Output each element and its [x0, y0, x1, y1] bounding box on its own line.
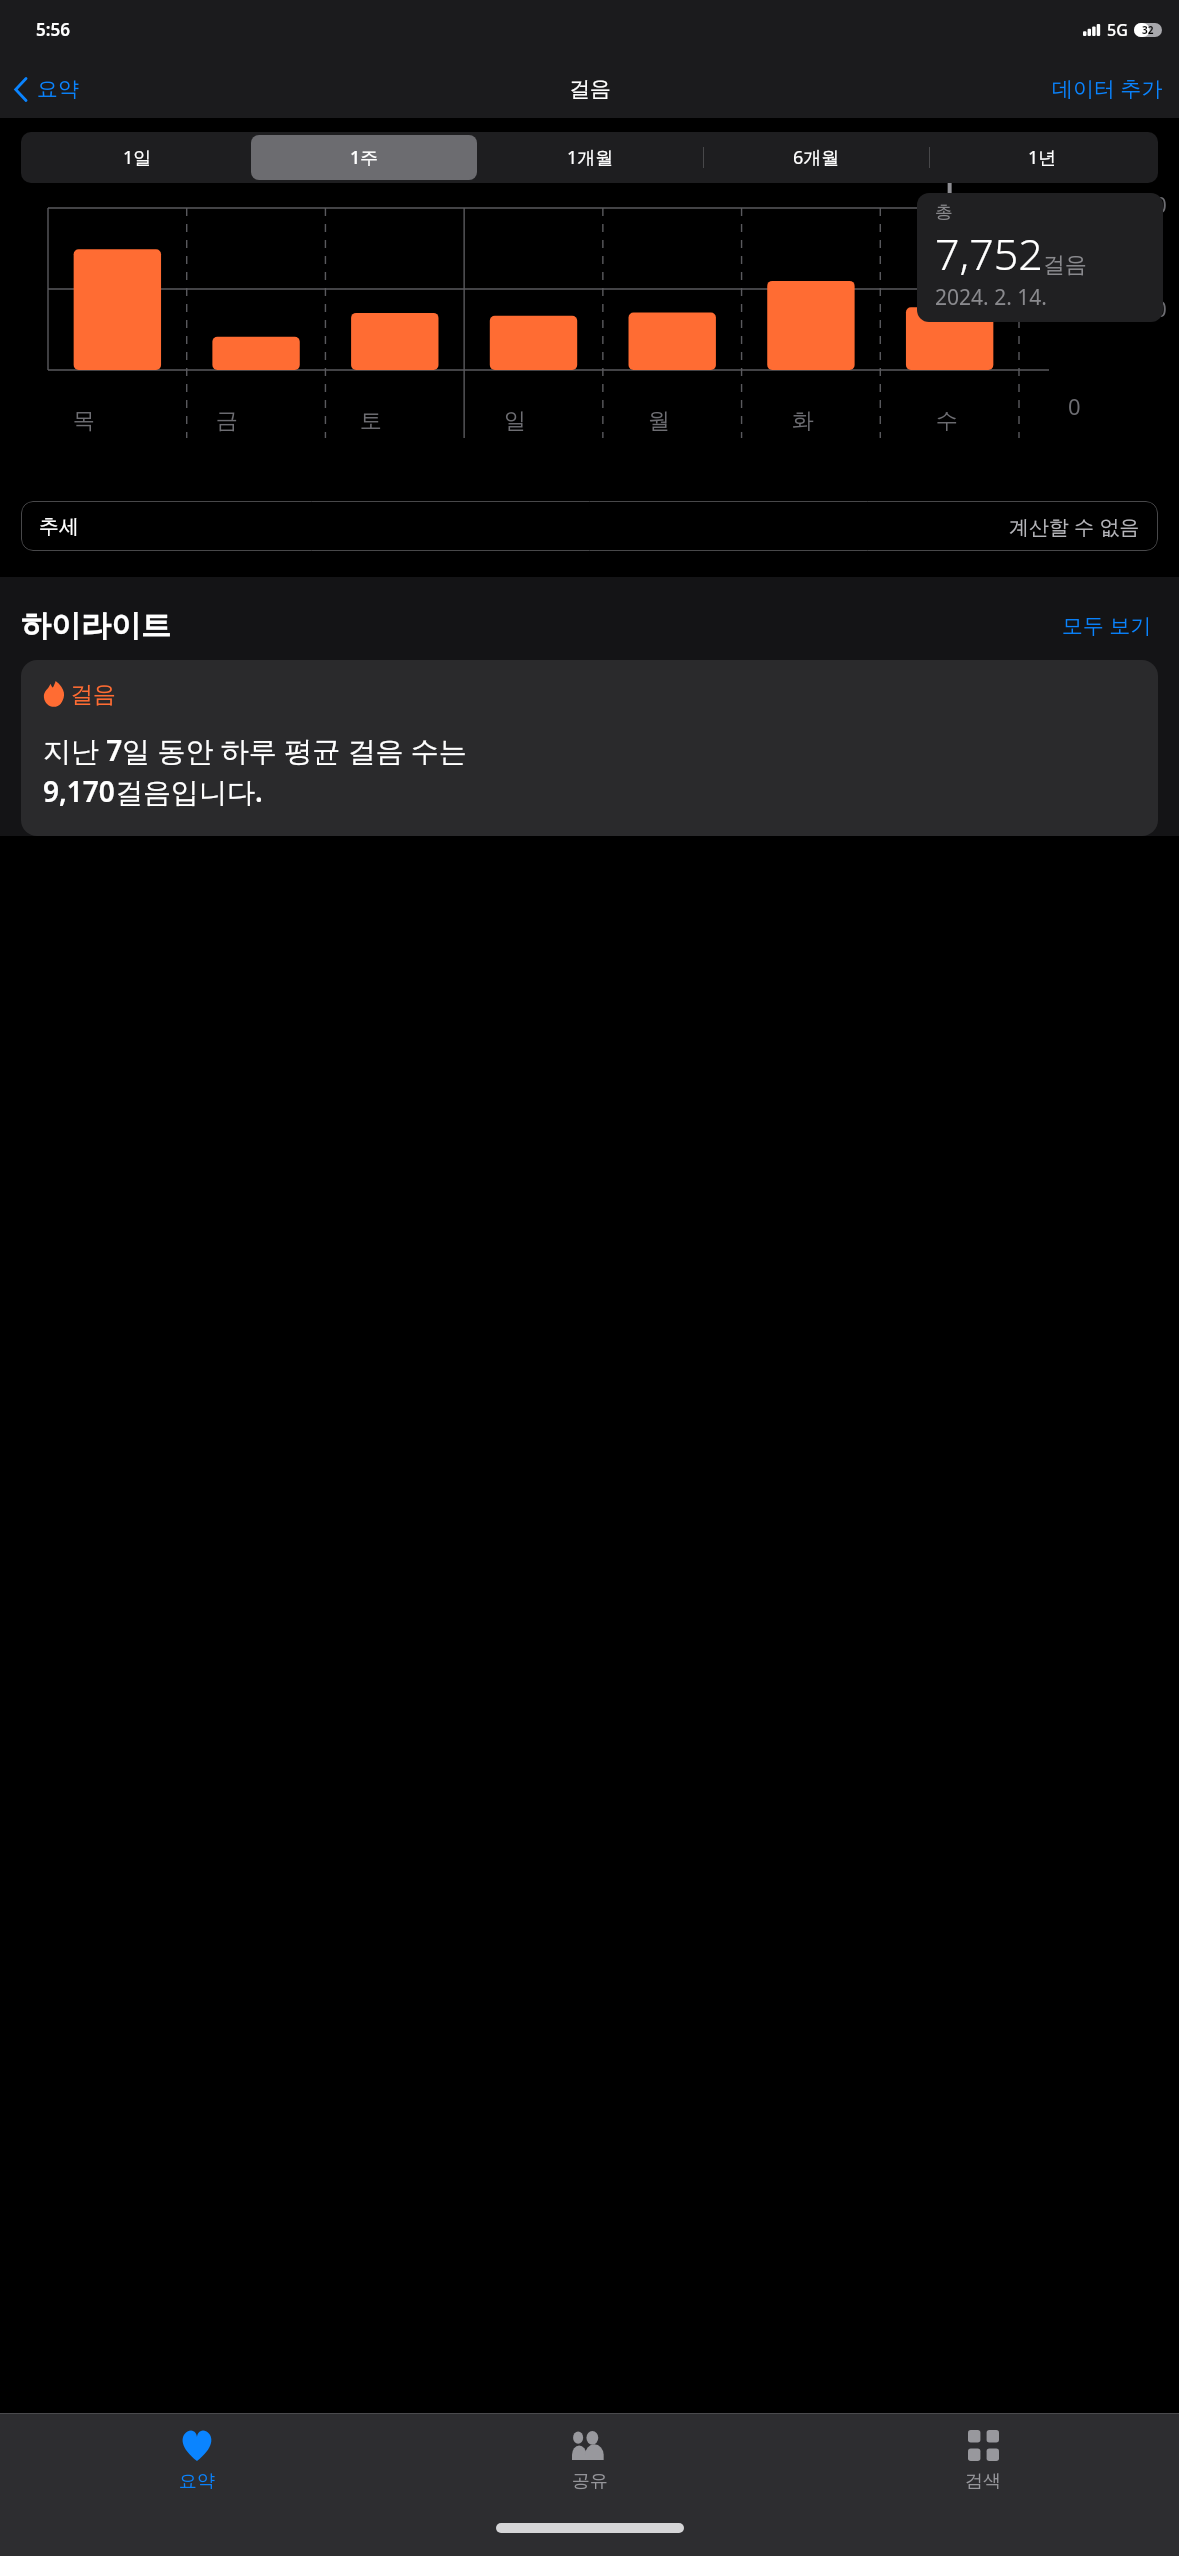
button[interactable]: 6개월 — [703, 135, 929, 180]
button[interactable]: 검색 — [786, 2414, 1179, 2493]
staticText: 월 — [648, 407, 670, 435]
button[interactable]: 1주 — [251, 135, 477, 180]
staticText: 요약 — [179, 2470, 215, 2493]
staticText: 토 — [360, 407, 382, 435]
other: 공유 — [572, 2431, 608, 2460]
staticText: 수 — [936, 407, 958, 435]
staticText: 0 — [1068, 391, 1081, 421]
button[interactable]: 1년 — [929, 135, 1155, 180]
button[interactable]: 1개월 — [477, 135, 703, 180]
staticText: 6개월 — [793, 145, 840, 170]
staticText: 화 — [792, 407, 814, 435]
staticText: 걸음 — [70, 680, 116, 709]
staticText: 총 — [935, 201, 953, 224]
staticText: 요약 — [37, 76, 79, 102]
staticText: 공유 — [572, 2470, 608, 2493]
button[interactable]: 모두 보기 — [1056, 605, 1158, 646]
staticText: 20,000 — [1098, 189, 1167, 219]
staticText: 5:56 — [36, 18, 70, 41]
staticText: 걸음 — [1043, 251, 1087, 279]
staticText: 목 — [73, 407, 95, 435]
staticText: 2024. 2. 14. — [935, 283, 1047, 312]
button[interactable]: 데이터 추가 — [1036, 64, 1179, 113]
staticText: 32 — [1142, 23, 1154, 37]
staticText: 7,752 — [935, 224, 1043, 283]
button[interactable]: 걸음 — [21, 660, 1158, 836]
button[interactable]: 추세 — [21, 501, 1158, 551]
staticText: 일 — [504, 407, 526, 435]
staticText: 1일 — [123, 145, 152, 170]
staticText: 하이라이트 — [21, 607, 171, 645]
staticText: 금 — [216, 407, 238, 435]
button[interactable]: 요약 — [0, 70, 93, 108]
staticText: 1개월 — [567, 145, 614, 170]
staticText: 1년 — [1028, 145, 1057, 170]
staticText: 10,000 — [1098, 293, 1167, 323]
other: 요약 — [180, 2430, 214, 2461]
staticText: 추세 — [39, 514, 79, 539]
staticText: 걸음 — [569, 76, 611, 102]
button[interactable]: 1일 — [24, 135, 251, 180]
staticText: 검색 — [965, 2470, 1001, 2493]
other: 검색 — [968, 2430, 999, 2461]
staticText: 1주 — [350, 145, 379, 170]
staticText: 5G — [1107, 19, 1128, 41]
staticText: 지난 7일 동안 하루 평균 걸음 수는 9,170걸음입니다. — [43, 731, 467, 810]
button[interactable]: 요약 — [0, 2414, 393, 2493]
staticText: 계산할 수 없음 — [1009, 513, 1140, 540]
button[interactable]: 공유 — [393, 2414, 786, 2493]
